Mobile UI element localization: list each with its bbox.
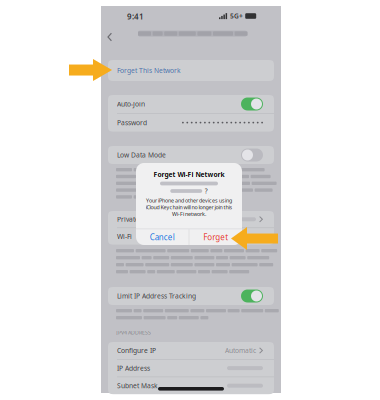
button[interactable]: Cancel [136,229,189,245]
staticText: Configure IP [117,346,156,355]
staticText: Cancel [150,232,175,242]
staticText: ? [205,187,208,195]
staticText: Password [117,118,147,127]
staticText: Private [117,215,139,224]
button[interactable]: Back [103,28,116,46]
staticText: Your iPhone and other devices using [146,197,232,204]
button[interactable]: Forget This Network [108,60,274,81]
staticText: Auto-Join [117,100,145,108]
staticText: IP Address [117,364,150,373]
staticText: iCloud Keychain will no longer join this [145,204,232,211]
staticText: IPV4 ADDRESS [116,329,151,336]
staticText: Wi-Fi network. [172,210,206,217]
staticText: Limit IP Address Tracking [117,292,196,300]
button[interactable]: Forget [189,229,242,245]
staticText: 9:41 [127,11,144,22]
staticText: Subnet Mask [117,381,158,390]
staticText: Forget Wi-Fi Network [153,170,224,179]
staticText: Low Data Mode [117,151,166,159]
staticText: Automatic [225,346,256,355]
staticText: Wi-Fi [117,232,132,241]
staticText: Forget [203,232,228,242]
staticText: 5G+ [230,12,243,20]
staticText: Forget This Network [117,66,181,75]
